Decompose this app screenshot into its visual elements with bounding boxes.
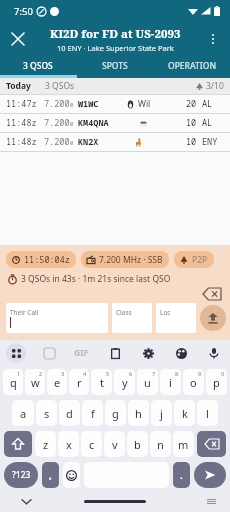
button[interactable]: a [12, 400, 34, 426]
button[interactable]: t [91, 369, 112, 395]
button[interactable]: Send [194, 462, 226, 488]
staticText: 10 [186, 136, 197, 148]
button[interactable]: 11:50:04z [6, 251, 76, 268]
button[interactable]: Clear [202, 287, 222, 301]
staticText: 11:48z [6, 117, 37, 129]
staticText: AL [202, 98, 213, 110]
button[interactable]: 11:48z [0, 114, 230, 132]
button[interactable]: y [114, 369, 135, 395]
button[interactable]: , [42, 462, 59, 488]
button[interactable]: 7.200 MHz · SSB [81, 251, 169, 268]
button[interactable]: SPOTS [76, 56, 153, 75]
button[interactable]: q [3, 369, 23, 395]
staticText: 3 [61, 370, 65, 377]
button[interactable]: w [25, 369, 45, 395]
button[interactable]: Shift [4, 431, 32, 457]
button[interactable]: k [174, 400, 195, 426]
button[interactable]: v [104, 431, 125, 457]
button[interactable]: j [151, 400, 172, 426]
staticText: 11:48z [6, 136, 37, 148]
staticText: t [100, 375, 104, 390]
staticText: o [190, 375, 197, 390]
button[interactable]: OPERATION [153, 56, 230, 75]
staticText: 3 QSOs [45, 80, 75, 92]
staticText: u [144, 375, 151, 390]
staticText: 3 QSOS [23, 60, 53, 72]
staticText: Today [6, 80, 31, 92]
staticText: 10 ENY · Lake Superior State Park [57, 43, 174, 53]
button[interactable]: u [137, 369, 158, 395]
button[interactable]: . [173, 462, 190, 488]
button[interactable]: Backspace [197, 431, 226, 457]
staticText: , [49, 469, 52, 482]
button[interactable]: palette [171, 343, 191, 363]
button[interactable]: l [197, 400, 218, 426]
button[interactable]: 11:48z [0, 133, 230, 151]
staticText: KI2D for FD at US-2093 [50, 26, 181, 42]
staticText: k [182, 406, 188, 421]
staticText: Their Call [10, 308, 39, 317]
button[interactable]: c [81, 431, 102, 457]
button[interactable]: e [47, 369, 67, 395]
staticText: l [206, 406, 209, 421]
button[interactable]: Apps [6, 343, 26, 363]
staticText: 3/10 [206, 80, 224, 92]
button[interactable]: o [183, 369, 204, 395]
button[interactable]: d [59, 400, 80, 426]
button[interactable]: p [206, 369, 227, 395]
button[interactable]: m [173, 431, 194, 457]
button[interactable]: ?123 [4, 462, 38, 488]
staticText: e [54, 375, 61, 390]
button[interactable]: f [82, 400, 103, 426]
button[interactable]: x [58, 431, 79, 457]
button[interactable]: h [128, 400, 149, 426]
staticText: p [213, 375, 220, 390]
button[interactable]: g [105, 400, 126, 426]
button[interactable]: s [36, 400, 57, 426]
staticText: 7.200 [44, 98, 70, 110]
staticText: m [178, 437, 189, 452]
staticText: AL [202, 117, 213, 129]
button[interactable]: n [150, 431, 171, 457]
button[interactable]: Class [112, 303, 152, 333]
staticText: 7 [152, 370, 156, 377]
staticText: 0 [70, 120, 74, 127]
staticText: 7:50 [14, 5, 33, 18]
staticText: 6 [129, 370, 133, 377]
button[interactable]: Their Call [6, 303, 108, 333]
button[interactable]: Keyboard layout [204, 494, 218, 508]
staticText: b [134, 437, 141, 452]
button[interactable]: i [160, 369, 181, 395]
button[interactable]: b [127, 431, 148, 457]
staticText: Wil [138, 98, 151, 110]
button[interactable]: mic [204, 343, 224, 363]
staticText: 20 [186, 98, 197, 110]
button[interactable]: settings [138, 343, 158, 363]
button[interactable]: Close [4, 25, 32, 53]
staticText: 11:50:04z [24, 254, 70, 266]
staticText: a [20, 406, 27, 421]
staticText: r [77, 375, 82, 390]
button[interactable]: 3 QSOS [0, 56, 76, 75]
button[interactable]: z [35, 431, 56, 457]
button[interactable]: Hide keyboard [18, 493, 34, 509]
button[interactable]: Loc [156, 303, 196, 333]
button[interactable]: 11:47z [0, 95, 230, 113]
button[interactable]: Log QSO [200, 305, 226, 331]
staticText: . [180, 469, 183, 482]
button[interactable]: More options [200, 26, 226, 52]
button[interactable]: clipboard [105, 343, 125, 363]
staticText: OPERATION [168, 60, 216, 72]
staticText: 3 QSOs in 43s · 1m 21s since last QSO [21, 273, 171, 285]
staticText: W1WC [78, 98, 99, 110]
staticText: 7.200 MHz · SSB [99, 254, 163, 266]
staticText: y [122, 375, 128, 390]
button[interactable]: r [69, 369, 89, 395]
staticText: h [135, 406, 142, 421]
staticText: x [66, 437, 72, 452]
button[interactable]: P2P [174, 251, 214, 268]
button[interactable]: sticker [39, 343, 59, 363]
button[interactable]: Emoji [63, 462, 80, 488]
button[interactable]: GIF [72, 345, 91, 361]
